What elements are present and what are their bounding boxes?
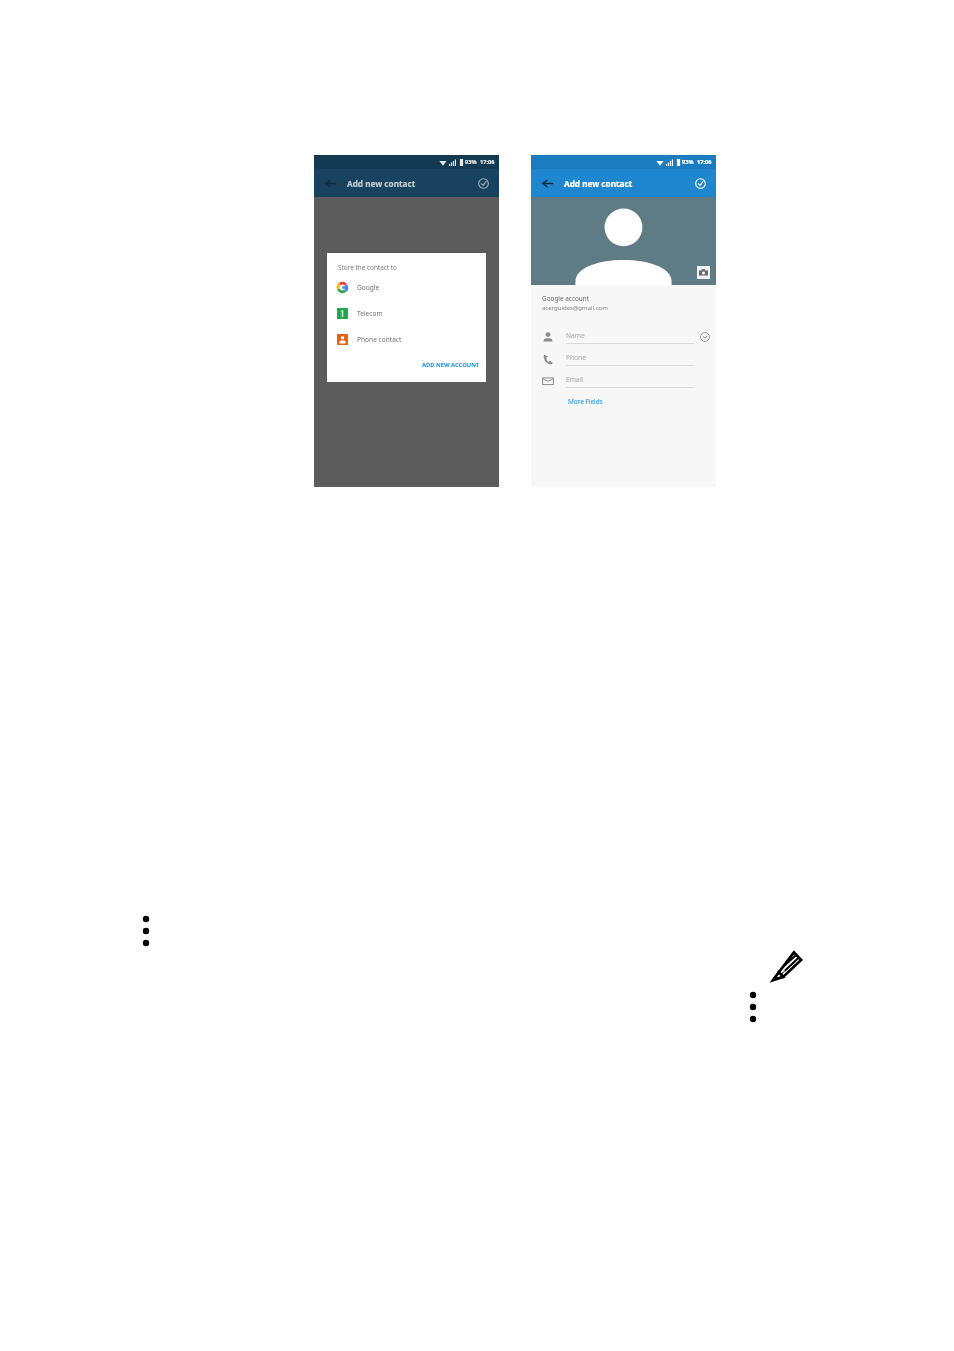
button[interactable]: Back bbox=[539, 175, 555, 191]
staticText: Store the contact to bbox=[338, 263, 397, 272]
button[interactable]: Edit bbox=[768, 947, 804, 983]
staticText: Telecom bbox=[357, 309, 383, 318]
button[interactable]: Email bbox=[531, 370, 716, 392]
staticText: Name bbox=[566, 331, 585, 340]
button[interactable]: Save contact bbox=[692, 175, 708, 191]
button[interactable]: Name bbox=[531, 326, 716, 348]
button[interactable]: Save contact bbox=[475, 175, 491, 191]
button[interactable]: More options bbox=[138, 910, 154, 952]
staticText: Email bbox=[566, 375, 583, 384]
button[interactable]: Telecom bbox=[327, 300, 486, 326]
button[interactable]: More options bbox=[745, 986, 761, 1028]
staticText: 93% bbox=[465, 158, 477, 166]
button[interactable]: Phone bbox=[531, 348, 716, 370]
staticText: Add new contact bbox=[347, 178, 416, 189]
staticText: Add new contact bbox=[564, 178, 633, 189]
staticText: acerguides@gmail.com bbox=[542, 304, 608, 312]
staticText: Phone contact bbox=[357, 335, 402, 344]
staticText: Google account bbox=[542, 294, 590, 303]
button[interactable]: Phone contact bbox=[327, 326, 486, 352]
staticText: Google bbox=[357, 283, 380, 292]
button[interactable]: Change photo bbox=[697, 266, 710, 279]
staticText: 17:06 bbox=[697, 158, 712, 166]
button[interactable]: ADD NEW ACCOUNT bbox=[327, 352, 486, 378]
staticText: ADD NEW ACCOUNT bbox=[422, 361, 480, 369]
staticText: 93% bbox=[682, 158, 694, 166]
staticText: Phone bbox=[566, 353, 586, 362]
staticText: More Fields bbox=[568, 397, 603, 406]
staticText: 17:06 bbox=[480, 158, 495, 166]
button[interactable]: More Fields bbox=[568, 397, 603, 406]
button[interactable]: Google bbox=[327, 274, 486, 300]
button[interactable]: Back bbox=[322, 175, 338, 191]
